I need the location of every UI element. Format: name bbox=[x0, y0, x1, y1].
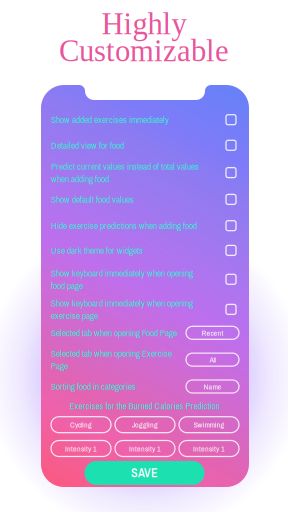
staticText: Selected tab when opening Food Page bbox=[51, 326, 177, 339]
button[interactable]: Sorting food in categories bbox=[50, 377, 240, 395]
staticText: Show default food values bbox=[51, 193, 134, 206]
staticText: Selected tab when opening Exercise Page bbox=[51, 347, 172, 372]
staticText: Recent bbox=[201, 327, 223, 338]
button[interactable]: Show added exercises immediately bbox=[50, 109, 240, 131]
staticText: Joggling bbox=[132, 419, 158, 430]
button[interactable]: Show keyboard immediately when opening f… bbox=[50, 268, 240, 290]
button[interactable]: Intensity 1 bbox=[51, 440, 111, 456]
button[interactable]: Joggling bbox=[115, 417, 175, 433]
staticText: SAVE bbox=[131, 465, 158, 481]
staticText: Swimming bbox=[193, 419, 224, 430]
staticText: Customizable bbox=[59, 34, 229, 68]
button[interactable]: Intensity 1 bbox=[179, 440, 239, 456]
staticText: Intensity 1 bbox=[193, 443, 225, 454]
staticText: Detailed view for food bbox=[51, 139, 124, 152]
button[interactable]: Selected tab when opening Food Page bbox=[50, 324, 240, 342]
staticText: Intensity 1 bbox=[65, 443, 97, 454]
staticText: Show keyboard immediately when opening f… bbox=[51, 267, 193, 292]
button[interactable]: Swimming bbox=[179, 417, 239, 433]
button[interactable]: Show default food values bbox=[50, 188, 240, 210]
button[interactable]: Predict current values instead of total … bbox=[50, 162, 240, 184]
staticText: Hide exercise predictions when adding fo… bbox=[51, 219, 197, 232]
staticText: Use dark theme for widgets bbox=[51, 244, 143, 257]
button[interactable]: Detailed view for food bbox=[50, 134, 240, 156]
staticText: Highly bbox=[101, 7, 186, 41]
button[interactable]: Selected tab when opening Exercise Page bbox=[50, 351, 240, 369]
staticText: Intensity 1 bbox=[129, 443, 161, 454]
button[interactable]: SAVE bbox=[84, 461, 204, 485]
staticText: Cycling bbox=[70, 419, 92, 430]
staticText: All bbox=[209, 354, 215, 365]
button[interactable]: Use dark theme for widgets bbox=[50, 239, 240, 261]
staticText: Predict current values instead of total … bbox=[51, 160, 199, 185]
staticText: Exercises for the Burned Calories Predic… bbox=[69, 400, 219, 412]
staticText: Sorting food in categories bbox=[51, 380, 136, 393]
staticText: Name bbox=[203, 381, 221, 392]
button[interactable]: Hide exercise predictions when adding fo… bbox=[50, 215, 240, 237]
button[interactable]: Show keyboard immediately when opening e… bbox=[50, 298, 240, 320]
staticText: Show added exercises immediately bbox=[51, 113, 169, 126]
button[interactable]: Intensity 1 bbox=[115, 440, 175, 456]
staticText: Show keyboard immediately when opening e… bbox=[51, 297, 193, 322]
button[interactable]: Cycling bbox=[51, 417, 111, 433]
